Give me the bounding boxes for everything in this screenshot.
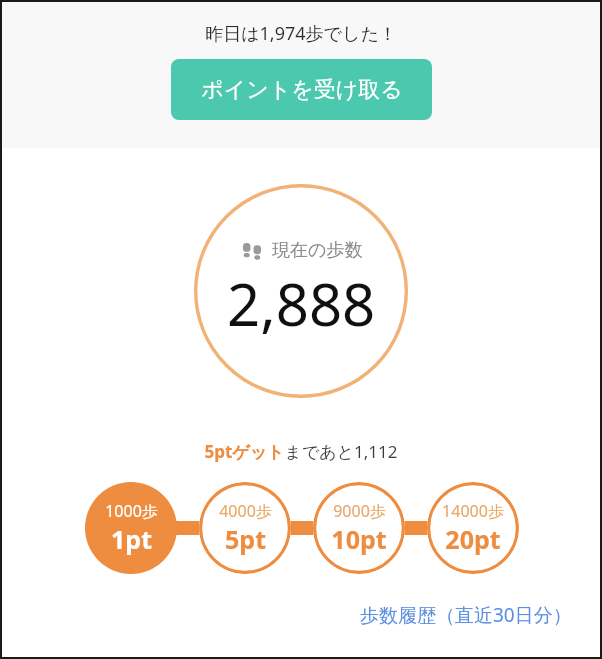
staticText: 5pt [225,522,266,556]
button[interactable]: 14000歩 [427,482,519,574]
staticText: 1000歩 [105,500,158,522]
staticText: 9000歩 [333,500,386,522]
staticText: 14000歩 [442,500,504,522]
staticText: 昨日は1,974歩でした！ [205,21,397,46]
button[interactable]: 9000歩 [313,482,405,574]
staticText: 4000歩 [219,500,272,522]
staticText: 歩数履歴（直近30日分） [360,602,572,628]
staticText: 2,888 [227,264,376,343]
button[interactable]: 4000歩 [199,482,291,574]
button[interactable]: 1000歩 [85,482,177,574]
staticText: 10pt [331,522,387,556]
button[interactable]: 歩数履歴（直近30日分） [358,600,574,630]
staticText: 20pt [445,522,501,556]
staticText: ポイントを受け取る [201,76,403,104]
button[interactable]: ポイントを受け取る [171,59,432,120]
staticText: 1pt [111,522,152,556]
staticText: 5ptゲットまであと1,112 [204,440,398,463]
staticText: 現在の歩数 [272,239,363,262]
